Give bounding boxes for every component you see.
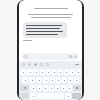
button[interactable]: Keyboard tool 2 [28, 63, 31, 66]
button[interactable]: Backspace [73, 85, 81, 91]
button[interactable]: Key [58, 69, 63, 75]
button[interactable]: Key [68, 77, 73, 83]
button[interactable]: Key [70, 69, 75, 75]
button[interactable] [23, 22, 67, 38]
button[interactable]: Key [29, 77, 35, 83]
button[interactable]: Key [30, 85, 36, 91]
button[interactable]: Key [62, 77, 67, 83]
button[interactable]: Key [67, 85, 72, 91]
button[interactable]: Key [52, 69, 57, 75]
button[interactable]: Camera [69, 55, 72, 58]
button[interactable]: Key [56, 77, 61, 83]
button[interactable]: Period [65, 93, 71, 99]
button[interactable]: Shift [20, 85, 29, 91]
button[interactable]: Key [76, 69, 81, 75]
button[interactable]: Keyboard tool 1 [22, 63, 25, 66]
button[interactable]: Voice message [74, 55, 77, 58]
button[interactable]: Key [49, 85, 54, 91]
button[interactable]: Comma [30, 93, 36, 99]
button[interactable]: Key [55, 85, 60, 91]
button[interactable]: Key [64, 69, 69, 75]
button[interactable]: Keyboard tool 4 [40, 63, 43, 66]
button[interactable]: Keyboard tool 5 [46, 63, 49, 66]
button[interactable]: Key [74, 77, 79, 83]
button[interactable]: Key [36, 77, 42, 83]
button[interactable]: More options [75, 64, 79, 65]
button[interactable]: Key [22, 77, 28, 83]
button[interactable]: Key [20, 69, 26, 75]
button[interactable]: Key [34, 69, 39, 75]
button[interactable]: Symbols [20, 93, 29, 99]
button[interactable]: Key [50, 77, 55, 83]
button[interactable]: Key [40, 69, 45, 75]
button[interactable]: Key [43, 85, 48, 91]
button[interactable]: Key [27, 69, 33, 75]
button[interactable]: Key [61, 85, 66, 91]
button[interactable]: Add content [24, 55, 27, 58]
button[interactable]: Key [46, 69, 51, 75]
button[interactable]: Key [37, 85, 42, 91]
button[interactable]: Key [43, 77, 49, 83]
button[interactable]: Add content [22, 53, 79, 60]
button[interactable]: Enter [72, 93, 81, 99]
button[interactable]: Keyboard tool 3 [34, 63, 37, 66]
